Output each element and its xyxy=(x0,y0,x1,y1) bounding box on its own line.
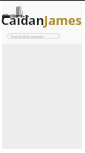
staticText: CaidanJames xyxy=(1,12,82,29)
button[interactable]: Search this website xyxy=(8,34,59,38)
staticText: Search this website xyxy=(11,34,44,38)
